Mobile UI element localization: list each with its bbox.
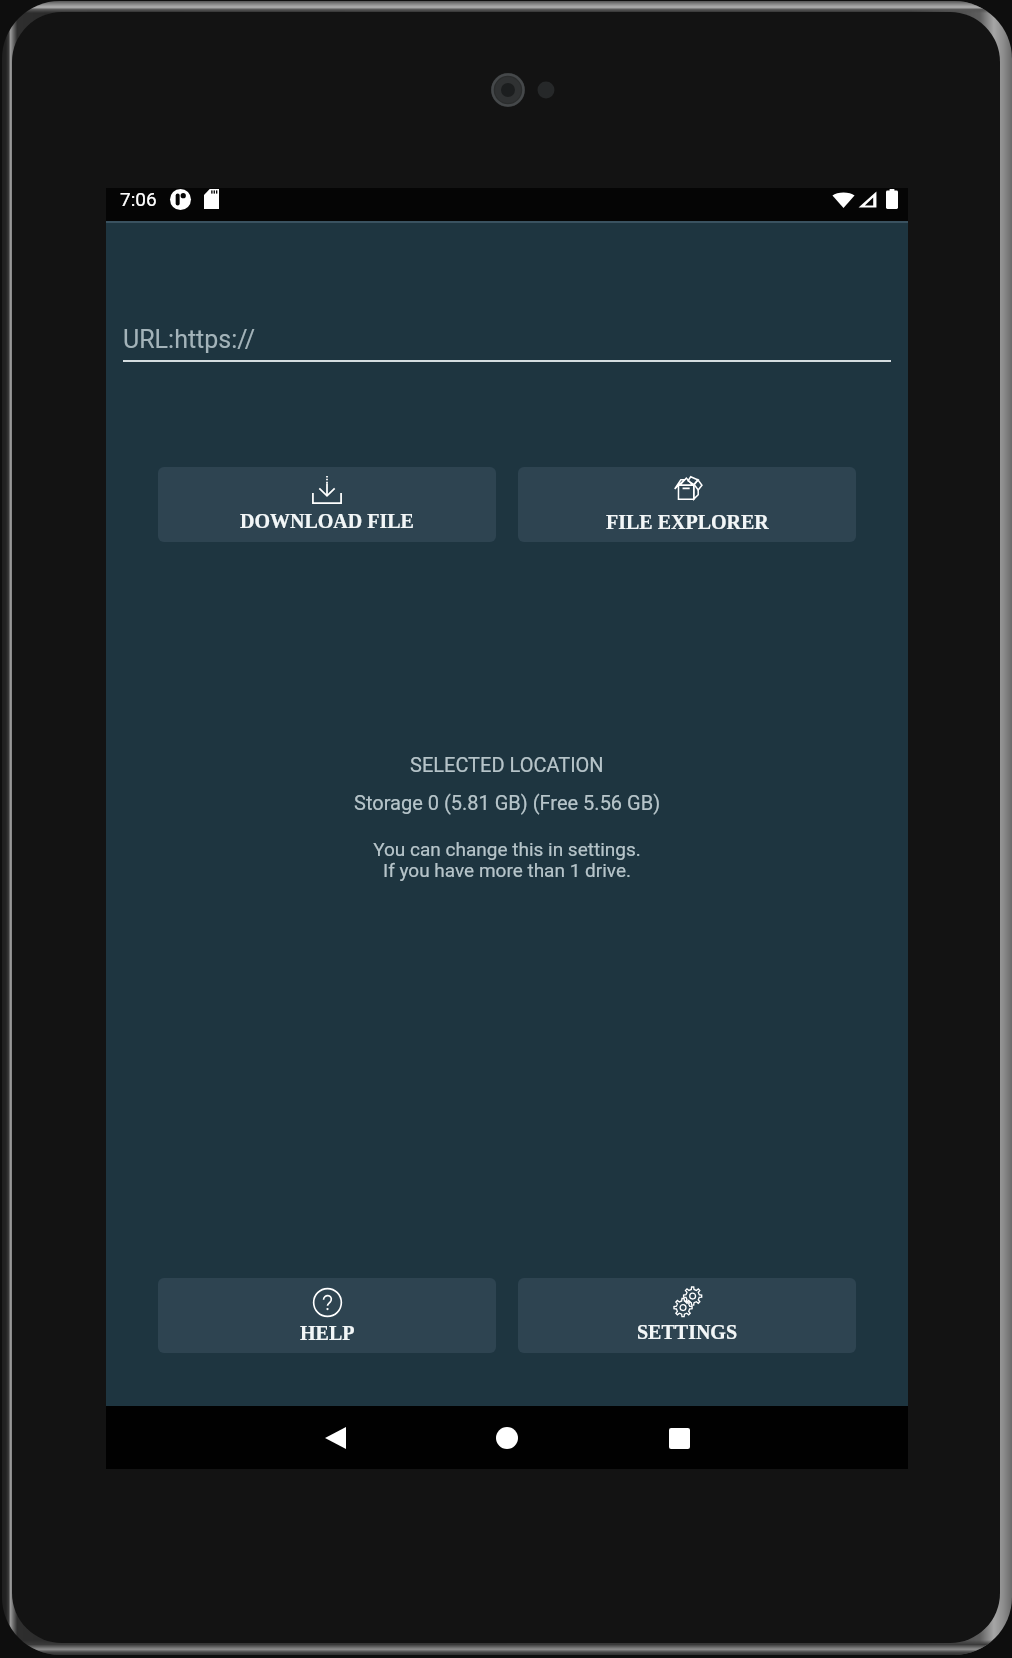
button[interactable]: Home bbox=[476, 1407, 538, 1469]
staticText: DOWNLOAD FILE bbox=[240, 510, 414, 532]
staticText: URL:https:// bbox=[123, 325, 256, 354]
button[interactable]: DOWNLOAD FILE bbox=[158, 467, 496, 542]
button[interactable]: Recents bbox=[648, 1407, 710, 1469]
staticText: FILE EXPLORER bbox=[606, 511, 769, 533]
staticText: SELECTED LOCATION bbox=[410, 753, 604, 776]
staticText: SETTINGS bbox=[637, 1321, 738, 1343]
staticText: HELP bbox=[300, 1322, 355, 1344]
staticText: Storage 0 (5.81 GB) (Free 5.56 GB) bbox=[354, 791, 661, 814]
button[interactable]: HELP bbox=[158, 1278, 496, 1353]
staticText: You can change this in settings. If you … bbox=[373, 838, 641, 882]
button[interactable]: Back bbox=[304, 1407, 366, 1469]
button[interactable]: SETTINGS bbox=[518, 1278, 856, 1353]
button[interactable]: FILE EXPLORER bbox=[518, 467, 856, 542]
staticText: 7:06 bbox=[120, 188, 157, 210]
button[interactable]: URL:https:// bbox=[123, 317, 891, 362]
